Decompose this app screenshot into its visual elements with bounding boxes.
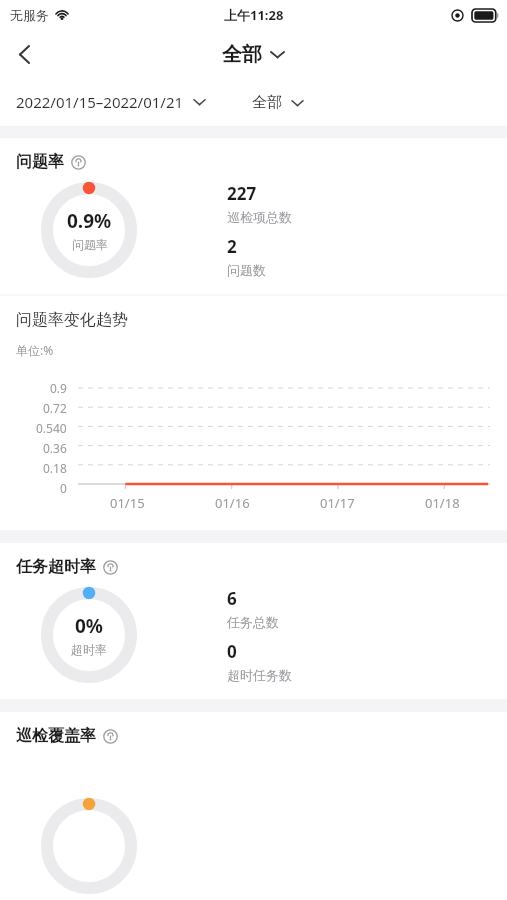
button[interactable]: Back: [0, 30, 48, 78]
staticText: 巡检覆盖率: [16, 726, 96, 746]
staticText: 任务总数: [227, 614, 279, 630]
button[interactable]: 问题率: [0, 138, 507, 174]
staticText: 上午11:28: [224, 6, 284, 24]
staticText: 0.18: [43, 460, 67, 476]
staticText: 0.540: [36, 420, 67, 436]
staticText: 无服务: [10, 7, 49, 23]
staticText: 01/18: [425, 494, 460, 512]
staticText: 巡检项总数: [227, 209, 292, 225]
button[interactable]: 任务超时率: [0, 543, 507, 579]
button[interactable]: 全部: [216, 36, 291, 73]
staticText: 问题率: [16, 152, 64, 172]
staticText: 0.36: [43, 440, 67, 456]
staticText: 0.9: [50, 380, 67, 396]
staticText: 问题率变化趋势: [16, 310, 128, 330]
staticText: 0.72: [43, 400, 67, 416]
staticText: 任务超时率: [16, 557, 96, 577]
staticText: 2022/01/15–2022/01/21: [16, 92, 184, 112]
staticText: 01/16: [215, 494, 250, 512]
staticText: 全部: [222, 42, 262, 67]
staticText: 01/17: [320, 494, 355, 512]
button[interactable]: 巡检覆盖率: [0, 712, 507, 746]
staticText: 01/15: [110, 494, 145, 512]
staticText: 全部: [252, 93, 282, 112]
staticText: 超时任务数: [227, 667, 292, 683]
staticText: 问题数: [227, 262, 266, 278]
button[interactable]: 2022/01/15–2022/01/21: [12, 84, 210, 120]
staticText: 0: [60, 480, 67, 496]
staticText: 0: [227, 640, 237, 663]
button[interactable]: 全部: [248, 85, 308, 120]
staticText: 单位:%: [16, 342, 54, 358]
staticText: 0.9%: [67, 208, 112, 234]
staticText: 227: [227, 182, 257, 205]
staticText: 2: [227, 235, 237, 258]
staticText: 超时率: [71, 642, 107, 657]
staticText: 0%: [75, 613, 104, 639]
staticText: 6: [227, 587, 237, 610]
staticText: 问题率: [72, 237, 108, 252]
